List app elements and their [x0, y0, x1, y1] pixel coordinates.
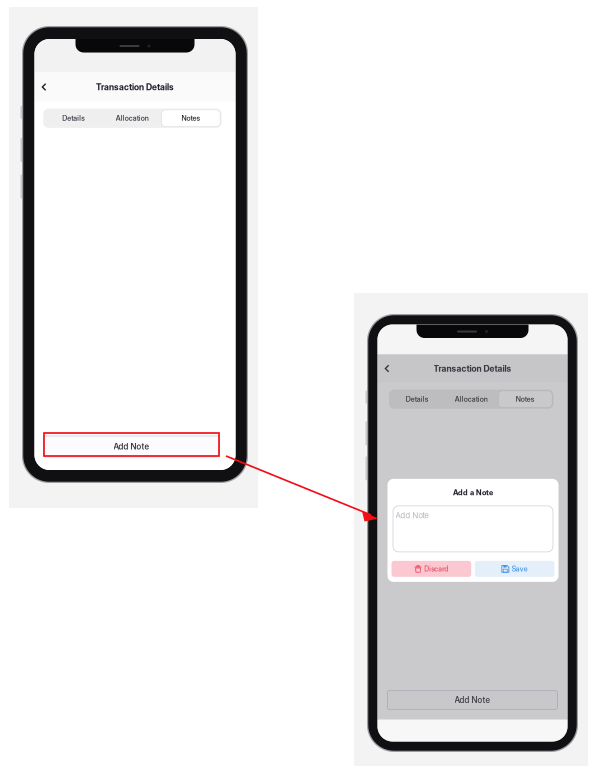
- staticText: Allocation: [116, 114, 149, 122]
- button[interactable]: Back: [34, 72, 53, 101]
- button[interactable]: Back: [377, 354, 396, 382]
- staticText: Discard: [424, 565, 448, 573]
- staticText: Add a Note: [453, 488, 493, 497]
- staticText: Notes: [181, 114, 200, 122]
- button[interactable]: Details: [44, 110, 103, 127]
- button[interactable]: Add Note: [43, 436, 219, 457]
- button[interactable]: Notes: [498, 391, 552, 408]
- staticText: Save: [512, 565, 528, 573]
- button[interactable]: Add Note: [387, 690, 557, 709]
- staticText: Add Note: [396, 510, 429, 520]
- button[interactable]: Allocation: [444, 391, 498, 408]
- staticText: Transaction Details: [433, 363, 511, 374]
- staticText: Details: [62, 114, 85, 122]
- staticText: Allocation: [455, 395, 488, 403]
- staticText: Add Note: [454, 695, 490, 705]
- staticText: Transaction Details: [96, 82, 174, 92]
- staticText: Add Note: [113, 441, 149, 451]
- button[interactable]: Save: [475, 561, 554, 577]
- button[interactable]: Allocation: [103, 110, 162, 127]
- button[interactable]: Discard: [391, 561, 471, 577]
- button[interactable]: Notes: [162, 110, 220, 127]
- button[interactable]: Details: [390, 391, 444, 408]
- staticText: Details: [406, 395, 429, 403]
- staticText: Notes: [516, 395, 535, 403]
